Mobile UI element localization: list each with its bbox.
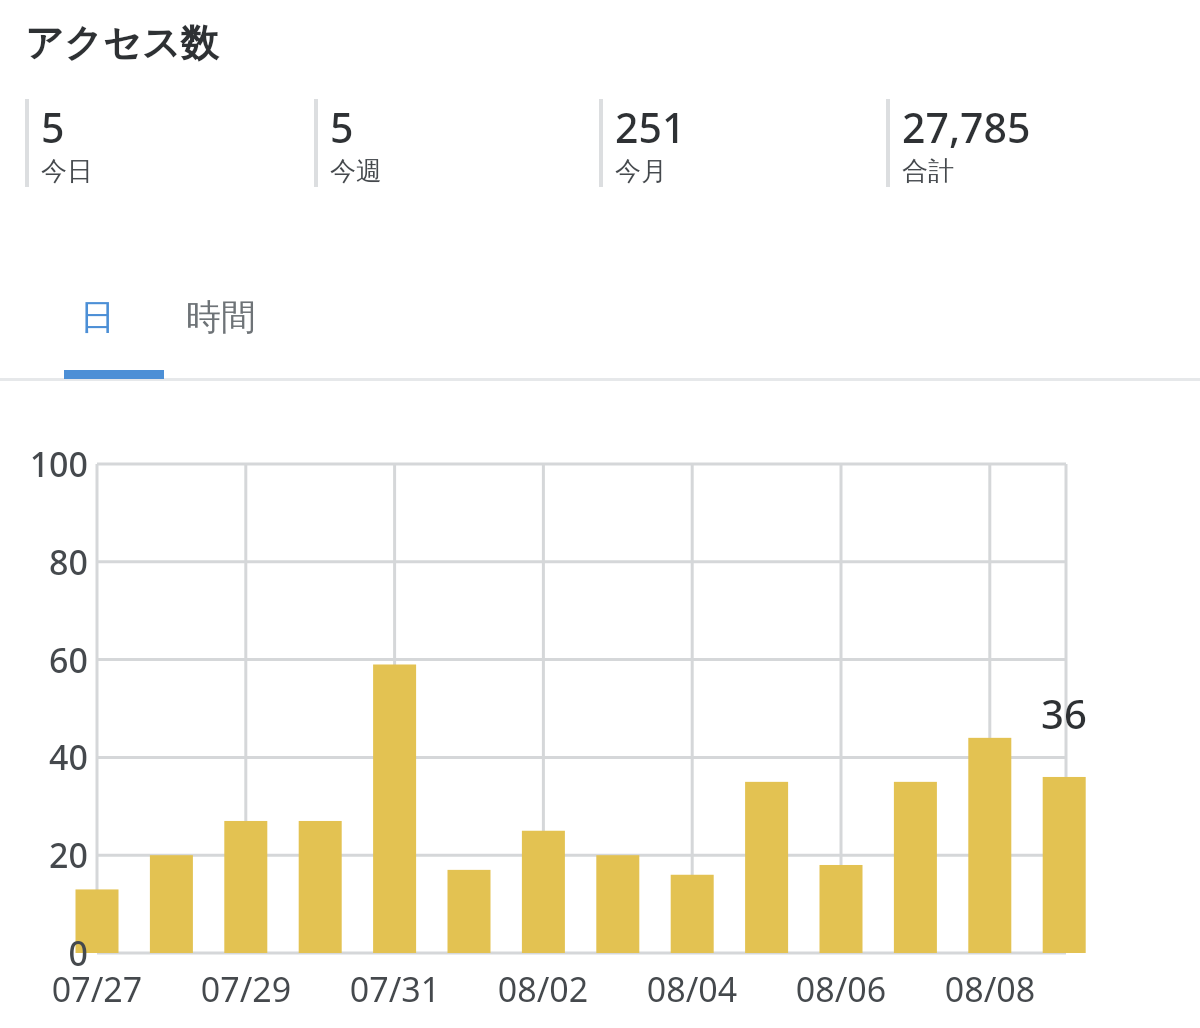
- staticText: 合計: [902, 155, 954, 188]
- staticText: 今日: [41, 155, 93, 188]
- staticText: 5: [330, 99, 354, 155]
- button[interactable]: 5: [314, 99, 584, 191]
- staticText: 日: [80, 295, 115, 339]
- staticText: 100: [0, 441, 88, 487]
- button[interactable]: 時間: [164, 280, 309, 378]
- staticText: 20: [0, 832, 88, 878]
- staticText: 時間: [186, 295, 256, 339]
- staticText: 27,785: [902, 99, 1031, 155]
- staticText: 08/08: [915, 966, 1065, 1012]
- staticText: 36: [989, 686, 1139, 740]
- staticText: 80: [0, 539, 88, 585]
- staticText: 40: [0, 734, 88, 780]
- staticText: 5: [41, 99, 65, 155]
- staticText: 08/06: [766, 966, 916, 1012]
- staticText: 251: [615, 99, 686, 155]
- staticText: 07/27: [22, 966, 172, 1012]
- button[interactable]: 27,785: [886, 99, 1156, 191]
- staticText: 08/02: [468, 966, 618, 1012]
- button[interactable]: 251: [599, 99, 869, 191]
- staticText: アクセス数: [25, 19, 219, 67]
- button[interactable]: 5: [25, 99, 295, 191]
- staticText: 今週: [330, 155, 382, 188]
- staticText: 07/29: [171, 966, 321, 1012]
- staticText: 0: [0, 930, 88, 976]
- button[interactable]: 日: [64, 280, 164, 378]
- staticText: 60: [0, 637, 88, 683]
- staticText: 07/31: [320, 966, 470, 1012]
- staticText: 08/04: [617, 966, 767, 1012]
- staticText: 今月: [615, 155, 667, 188]
